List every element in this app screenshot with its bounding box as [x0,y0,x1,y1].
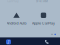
staticText: 9:41 AM [36,0,48,3]
button[interactable]: Phone [44,40,49,44]
button[interactable]: Music [6,39,11,44]
staticText: Apple CarPlay [32,21,55,25]
button[interactable]: Apple CarPlay [30,13,57,25]
button[interactable]: Android Auto [3,13,30,25]
staticText: Android Auto [6,21,26,25]
staticText: ♪ [7,39,10,45]
